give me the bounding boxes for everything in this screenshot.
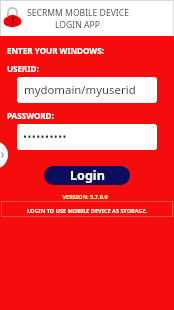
staticText: SECRMM MOBILE DEVICE: [27, 7, 129, 19]
staticText: ENTER YOUR WINDOWS:: [7, 45, 104, 56]
staticText: VERSION: 5.7.0.0: [0, 193, 172, 201]
staticText: mydomain/myuserid: [24, 82, 136, 98]
button[interactable]: mydomain/myuserid: [17, 77, 157, 103]
staticText: Login: [70, 167, 105, 184]
staticText: LOGIN TO USE MOBILE DEVICE AS STORAGE.: [27, 207, 148, 215]
button[interactable]: Open navigation: [0, 141, 8, 169]
staticText: ••••••••••: [23, 130, 67, 144]
button[interactable]: Login: [44, 166, 130, 185]
staticText: LOGIN APP: [55, 19, 100, 31]
staticText: PASSWORD:: [7, 110, 54, 121]
button[interactable]: Password: [17, 124, 157, 150]
button[interactable]: LOGIN TO USE MOBILE DEVICE AS STORAGE.: [1, 201, 173, 217]
staticText: USERID:: [7, 63, 39, 74]
